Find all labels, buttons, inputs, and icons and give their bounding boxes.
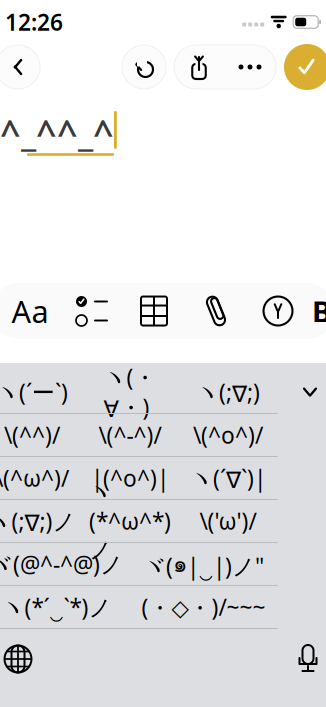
button[interactable]: Expand suggestions [277, 371, 326, 413]
staticText: |(^o^)| [91, 463, 169, 493]
staticText: Aa [11, 291, 48, 331]
button[interactable]: \(^ω^)/ [0, 457, 81, 499]
button[interactable]: ヽ(´ー`) [0, 371, 81, 413]
button[interactable]: Bold [309, 283, 326, 339]
staticText: ヽ(*^ω^*)ノ [89, 478, 171, 564]
button[interactable]: Markup [247, 283, 309, 339]
button[interactable]: \('ω')/ [179, 500, 277, 542]
staticText: \(^o^)/ [193, 420, 263, 450]
button[interactable]: ヽ(;∇;) [179, 371, 277, 413]
staticText: (・◇・)/~~~ [141, 592, 265, 622]
staticText: \('ω')/ [199, 506, 256, 536]
button[interactable]: ヽ(*´‿`*)ノ [0, 586, 130, 628]
button[interactable]: Back [0, 45, 40, 89]
staticText: ヽ(´∇`)| [190, 463, 266, 493]
staticText: \(^^)/ [4, 420, 60, 450]
button[interactable]: More options [224, 45, 276, 89]
button[interactable]: Share [174, 45, 224, 89]
button[interactable]: \(^o^)/ [179, 414, 277, 456]
staticText: ヾ(@^­-^@)ノ [0, 549, 123, 579]
button[interactable]: ヾ(@^­-^@)ノ [0, 543, 130, 585]
staticText: ^_^^_^ [0, 108, 114, 156]
button[interactable]: Undo [122, 45, 166, 89]
staticText: ヾ(๑|‿|)ノ" [143, 546, 264, 581]
button[interactable]: ヾ(๑|‿|)ノ" [130, 543, 277, 585]
button[interactable]: ヽ(*^ω^*)ノ [81, 500, 179, 542]
staticText: ヽ(*´‿`*)ノ [1, 592, 111, 622]
staticText: \(^ω^)/ [0, 463, 69, 493]
staticText: 12:26 [5, 7, 63, 37]
button[interactable]: |(^o^)| [81, 457, 179, 499]
button[interactable]: ヽ(;∇;)ノ [0, 500, 81, 542]
button[interactable]: Text format [0, 283, 61, 339]
button[interactable]: Switch keyboard [0, 629, 48, 689]
button[interactable]: Table [123, 283, 185, 339]
staticText: ヽ(´ー`) [0, 377, 68, 407]
button[interactable]: (・◇・)/~~~ [130, 586, 277, 628]
staticText: B [312, 291, 326, 330]
button[interactable]: Attach file [185, 283, 247, 339]
staticText: \(^-^)/ [98, 420, 161, 450]
staticText: ヽ(;∇;)ノ [0, 506, 75, 536]
button[interactable]: Checklist [61, 283, 123, 339]
button[interactable]: ヽ(・∀・) [81, 371, 179, 413]
button[interactable]: \(^^)/ [0, 414, 81, 456]
button[interactable]: Dictate [278, 629, 326, 689]
button[interactable]: Done [284, 44, 326, 90]
button[interactable]: \(^-^)/ [81, 414, 179, 456]
button[interactable]: ヽ(´∇`)| [179, 457, 277, 499]
staticText: ヽ(・∀・) [103, 362, 156, 422]
staticText: ヽ(;∇;) [196, 377, 260, 407]
